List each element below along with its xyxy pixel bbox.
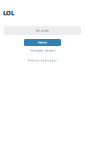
staticText: LOL [3, 10, 15, 17]
staticText: No posts. [36, 29, 49, 32]
button[interactable]: View web version [0, 48, 85, 53]
staticText: View web version [29, 49, 55, 52]
staticText: Home [38, 41, 47, 44]
button[interactable]: Home [24, 39, 61, 46]
staticText: Powered by Blogger. [27, 59, 57, 62]
